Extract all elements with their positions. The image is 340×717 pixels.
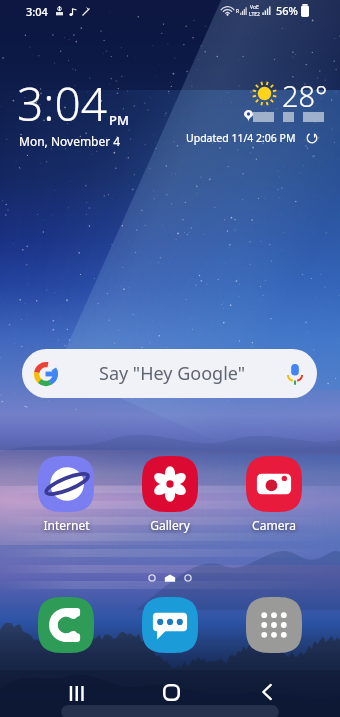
button[interactable]: Home — [148, 669, 194, 715]
button[interactable]: Recents — [54, 670, 100, 716]
button[interactable]: Home screen — [164, 572, 176, 584]
staticText: Gallery — [150, 517, 190, 533]
staticText: R — [236, 8, 240, 15]
staticText: 28° — [282, 76, 328, 115]
staticText: Camera — [252, 517, 296, 533]
staticText: 3:04 — [26, 4, 48, 19]
staticText: 56% — [276, 3, 298, 18]
staticText: LTE2 — [249, 11, 260, 18]
staticText: Updated 11/4 2:06 PM — [186, 131, 296, 145]
button[interactable]: Clock — [17, 72, 128, 151]
button[interactable]: Back — [244, 669, 290, 715]
button[interactable]: Phone — [38, 597, 94, 653]
button[interactable]: Weather — [180, 72, 325, 150]
staticText: Mon, November 4 — [19, 133, 121, 149]
button[interactable]: Camera — [246, 456, 302, 533]
staticText: PM — [109, 111, 129, 129]
button[interactable]: Messages — [142, 597, 198, 653]
button[interactable]: Internet — [38, 456, 94, 533]
staticText: VoE — [250, 4, 259, 11]
button[interactable]: Gallery — [142, 456, 198, 533]
staticText: Internet — [43, 517, 90, 533]
staticText: 3:04 — [17, 72, 108, 135]
staticText: Say "Hey Google" — [99, 361, 246, 386]
button[interactable]: Apps — [246, 597, 302, 653]
button[interactable]: Search — [22, 349, 317, 398]
